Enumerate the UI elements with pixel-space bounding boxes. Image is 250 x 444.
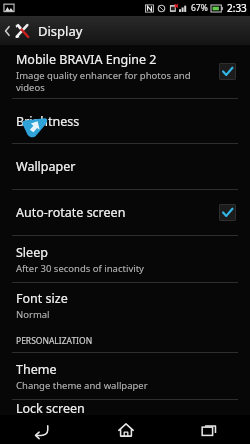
button[interactable]: Auto-rotate screen: [0, 190, 250, 235]
button[interactable]: Theme: [0, 353, 250, 399]
button[interactable]: Home: [84, 415, 167, 444]
staticText: Display: [38, 22, 83, 40]
button[interactable]: Checked: [219, 204, 236, 221]
staticText: Change theme and wallpaper: [16, 379, 148, 392]
button[interactable]: Font size: [0, 283, 250, 328]
staticText: Lock screen: [16, 400, 85, 415]
button[interactable]: Sleep: [0, 236, 250, 282]
staticText: Sleep: [16, 244, 48, 261]
staticText: Mobile BRAVIA Engine 2: [16, 51, 157, 68]
button[interactable]: Mobile BRAVIA Engine 2: [0, 45, 250, 98]
staticText: Wallpaper: [16, 158, 76, 175]
button[interactable]: Back: [0, 415, 84, 444]
staticText: Font size: [16, 290, 68, 307]
staticText: PERSONALIZATION: [16, 335, 93, 347]
button[interactable]: Wallpaper: [0, 144, 250, 189]
staticText: Auto-rotate screen: [16, 204, 126, 221]
button[interactable]: Lock screen: [0, 400, 250, 415]
button[interactable]: Checked: [219, 63, 236, 80]
staticText: After 30 seconds of inactivity: [16, 262, 144, 275]
staticText: Image quality enhancer for photos and vi…: [16, 69, 191, 93]
staticText: Normal: [16, 308, 50, 321]
staticText: 67%: [191, 2, 208, 14]
staticText: 2:33: [227, 1, 247, 15]
button[interactable]: Brightness: [0, 99, 250, 143]
button[interactable]: Up, Display: [0, 16, 250, 45]
staticText: Theme: [16, 361, 57, 378]
staticText: Brightness: [16, 113, 80, 130]
button[interactable]: Recent apps: [167, 415, 250, 444]
